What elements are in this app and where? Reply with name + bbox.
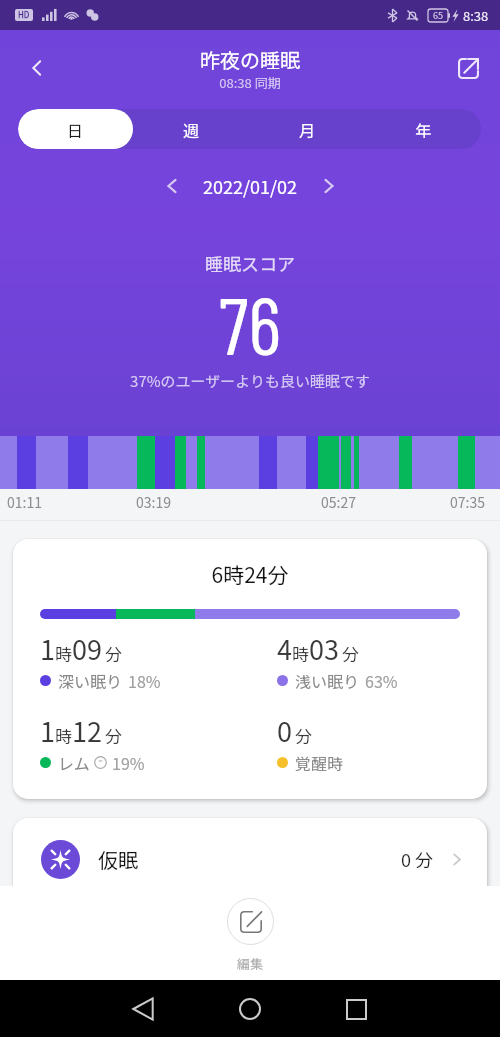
staticText: 1 — [40, 629, 55, 668]
button[interactable]: Recents — [334, 987, 378, 1031]
staticText: 0 — [277, 711, 292, 750]
staticText: 仮眠 — [98, 845, 138, 874]
staticText: 76 — [0, 275, 500, 371]
staticText: 覚醒時 — [295, 751, 344, 774]
staticText: 年 — [415, 118, 432, 141]
staticText: 18% — [128, 669, 161, 692]
staticText: 分 — [105, 641, 122, 666]
staticText: 19% — [112, 751, 145, 774]
staticText: 4 — [277, 629, 292, 668]
staticText: 65 — [433, 9, 443, 22]
staticText: 睡眠スコア — [205, 250, 295, 276]
button[interactable]: Previous day — [155, 169, 189, 203]
staticText: 浅い眠り — [295, 669, 360, 692]
staticText: 深い眠り — [58, 669, 123, 692]
staticText: 編集 — [237, 954, 264, 973]
staticText: 時 — [292, 641, 309, 666]
staticText: 05:27 — [321, 492, 356, 512]
button[interactable]: 編集 — [227, 898, 274, 973]
staticText: 月 — [299, 118, 316, 141]
staticText: 03 — [309, 629, 339, 668]
staticText: 1 — [40, 711, 55, 750]
button[interactable]: 日 — [18, 109, 133, 149]
staticText: 時 — [55, 641, 72, 666]
staticText: 07:35 — [450, 492, 485, 512]
staticText: 2022/01/02 — [203, 173, 298, 199]
staticText: 時 — [55, 723, 72, 748]
staticText: 分 — [105, 723, 122, 748]
staticText: 日 — [67, 118, 84, 141]
staticText: 03:19 — [136, 492, 171, 512]
staticText: 37%のユーザーよりも良い睡眠です — [0, 370, 500, 392]
button[interactable]: Home — [228, 987, 272, 1031]
staticText: 08:38 同期 — [0, 73, 500, 92]
button[interactable]: 仮眠 — [13, 818, 487, 886]
staticText: レム — [58, 751, 90, 774]
staticText: 0 分 — [401, 846, 434, 872]
staticText: 昨夜の睡眠 — [0, 45, 500, 74]
staticText: 12 — [72, 711, 102, 750]
button[interactable]: Back — [121, 987, 165, 1031]
staticText: 分 — [295, 723, 312, 748]
button[interactable]: 週 — [133, 109, 249, 149]
staticText: 63% — [365, 669, 398, 692]
staticText: 01:11 — [7, 492, 42, 512]
button[interactable]: 月 — [249, 109, 365, 149]
staticText: HD — [18, 9, 30, 21]
button[interactable]: Share — [450, 50, 486, 86]
staticText: 週 — [183, 118, 200, 141]
staticText: 8:38 — [463, 6, 489, 25]
button[interactable]: Back — [19, 50, 55, 86]
staticText: 6時24分 — [13, 559, 487, 589]
button[interactable]: 年 — [365, 109, 481, 149]
staticText: 09 — [72, 629, 102, 668]
button[interactable]: Next day — [312, 169, 346, 203]
staticText: 分 — [342, 641, 359, 666]
